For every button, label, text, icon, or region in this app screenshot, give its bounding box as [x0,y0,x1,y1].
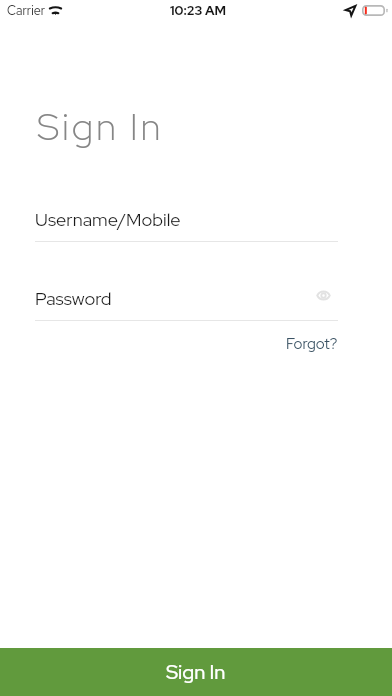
staticText: Sign In [37,101,164,151]
staticText: Username/Mobile [35,207,181,231]
staticText: Carrier [7,2,46,19]
staticText: Sign In [166,659,226,685]
button[interactable]: Sign In [0,648,392,696]
button[interactable]: Forgot? [286,334,338,354]
staticText: 10:23 AM [170,2,226,19]
button[interactable]: Show password [310,282,336,308]
staticText: Password [35,286,112,310]
